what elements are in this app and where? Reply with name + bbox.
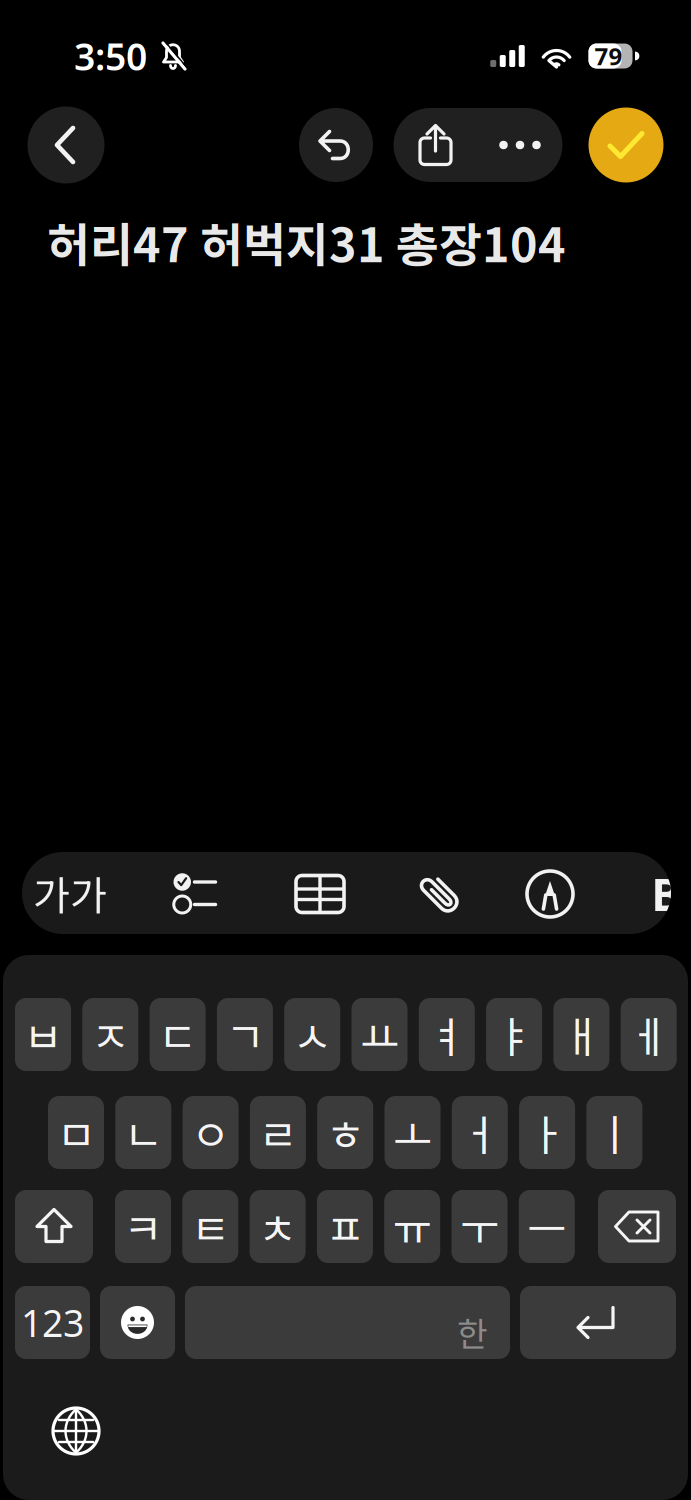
button[interactable]: Undo xyxy=(299,108,373,182)
button[interactable] xyxy=(598,1190,676,1263)
button[interactable]: Text formatting xyxy=(15,852,125,934)
staticText: 79 xyxy=(594,40,622,72)
staticText: ㅜ xyxy=(460,1196,499,1257)
staticText: ㅐ xyxy=(562,1004,601,1065)
staticText: B xyxy=(651,865,680,923)
staticText: ㅠ xyxy=(393,1196,432,1257)
staticText: ㅅ xyxy=(293,1004,332,1065)
staticText: ㄹ xyxy=(258,1102,297,1163)
button[interactable]: ㅏ xyxy=(519,1096,575,1169)
staticText: ㅌ xyxy=(191,1196,230,1257)
button[interactable]: ㄴ xyxy=(115,1096,171,1169)
staticText: ㅁ xyxy=(56,1102,95,1163)
staticText: ㅋ xyxy=(123,1196,162,1257)
button[interactable]: ㅓ xyxy=(452,1096,508,1169)
button[interactable]: ㅕ xyxy=(419,998,475,1071)
button[interactable]: More options xyxy=(477,108,562,182)
button[interactable]: ㅠ xyxy=(384,1190,440,1263)
button[interactable]: ㄷ xyxy=(150,998,206,1071)
button[interactable]: ㄱ xyxy=(217,998,273,1071)
button[interactable]: ㅔ xyxy=(621,998,677,1071)
staticText: ㅓ xyxy=(460,1102,499,1163)
button[interactable]: ㅍ xyxy=(317,1190,373,1263)
staticText: 123 xyxy=(21,1298,84,1347)
staticText: ㅍ xyxy=(325,1196,364,1257)
staticText: ㅑ xyxy=(495,1004,534,1065)
button[interactable]: Done xyxy=(588,107,663,182)
staticText: ㅏ xyxy=(528,1102,567,1163)
button[interactable]: ㅑ xyxy=(486,998,542,1071)
staticText: ㄷ xyxy=(158,1004,197,1065)
staticText: ㄴ xyxy=(124,1102,163,1163)
button[interactable]: ㅈ xyxy=(82,998,138,1071)
staticText: ㅣ xyxy=(595,1102,634,1163)
button[interactable]: ㅁ xyxy=(48,1096,104,1169)
button[interactable]: ㅋ xyxy=(115,1190,171,1263)
staticText: ㅗ xyxy=(393,1102,432,1163)
button[interactable]: ㅣ xyxy=(586,1096,642,1169)
button[interactable]: ㅇ xyxy=(183,1096,239,1169)
staticText: ㅔ xyxy=(629,1004,668,1065)
button[interactable]: 123 xyxy=(15,1286,90,1359)
button[interactable]: Attach file xyxy=(385,853,495,935)
staticText: ㅎ xyxy=(326,1102,365,1163)
button[interactable]: Switch keyboard xyxy=(41,1396,111,1466)
staticText: ㅛ xyxy=(360,1004,399,1065)
button[interactable]: ㄹ xyxy=(250,1096,306,1169)
staticText: 가가 xyxy=(33,864,107,922)
button[interactable] xyxy=(520,1286,676,1359)
button[interactable]: ㅂ xyxy=(15,998,71,1071)
staticText: ㅇ xyxy=(191,1102,230,1163)
button[interactable]: ㅜ xyxy=(451,1190,507,1263)
button[interactable]: Table xyxy=(265,853,375,935)
staticText: ㅂ xyxy=(23,1004,62,1065)
staticText: 허리47 허벅지31 총장104 xyxy=(47,208,566,276)
staticText: ㅊ xyxy=(258,1196,297,1257)
button[interactable]: ㅌ xyxy=(182,1190,238,1263)
button[interactable]: Markup xyxy=(495,853,605,935)
button[interactable]: ㅡ xyxy=(519,1190,575,1263)
button[interactable]: Checklist xyxy=(140,852,250,934)
button[interactable]: ㅎ xyxy=(317,1096,373,1169)
button[interactable]: ㅊ xyxy=(250,1190,306,1263)
staticText: ㄱ xyxy=(225,1004,264,1065)
button[interactable]: ㅅ xyxy=(284,998,340,1071)
button[interactable]: Back xyxy=(27,106,104,183)
staticText: ㅕ xyxy=(427,1004,466,1065)
staticText: ㅈ xyxy=(91,1004,130,1065)
button[interactable]: Share xyxy=(393,108,477,182)
staticText: 한 xyxy=(457,1308,488,1356)
button[interactable]: Bold xyxy=(644,853,688,935)
button[interactable]: ㅛ xyxy=(351,998,407,1071)
staticText: 3:50 xyxy=(74,31,147,81)
button[interactable] xyxy=(100,1286,175,1359)
staticText: ㅡ xyxy=(527,1196,566,1257)
button[interactable]: ㅗ xyxy=(384,1096,440,1169)
button[interactable]: Space xyxy=(185,1286,510,1359)
button[interactable]: ㅐ xyxy=(553,998,609,1071)
button[interactable] xyxy=(15,1190,93,1263)
